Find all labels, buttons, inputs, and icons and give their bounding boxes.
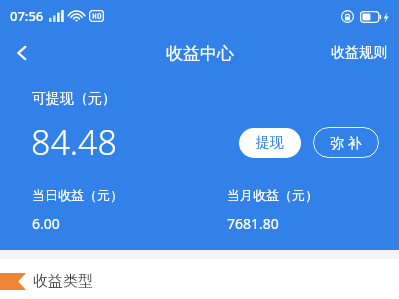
staticText: 收益类型 xyxy=(33,272,93,291)
staticText: 弥 补 xyxy=(330,133,362,152)
staticText: 7681.80 xyxy=(227,214,279,233)
staticText: 84.48 xyxy=(31,119,117,165)
staticText: 可提现（元） xyxy=(32,90,116,108)
button[interactable]: 提现 xyxy=(239,128,301,158)
staticText: 收益中心 xyxy=(166,43,234,64)
staticText: 当月收益（元） xyxy=(227,187,318,203)
staticText: 6.00 xyxy=(32,214,60,233)
staticText: 07:56 xyxy=(10,7,44,25)
button[interactable]: 弥 补 xyxy=(313,127,379,158)
staticText: 收益规则 xyxy=(331,44,387,62)
staticText: 提现 xyxy=(256,134,284,152)
button[interactable]: Back xyxy=(0,32,44,74)
staticText: 当日收益（元） xyxy=(32,187,123,203)
button[interactable]: 收益规则 xyxy=(319,36,399,70)
